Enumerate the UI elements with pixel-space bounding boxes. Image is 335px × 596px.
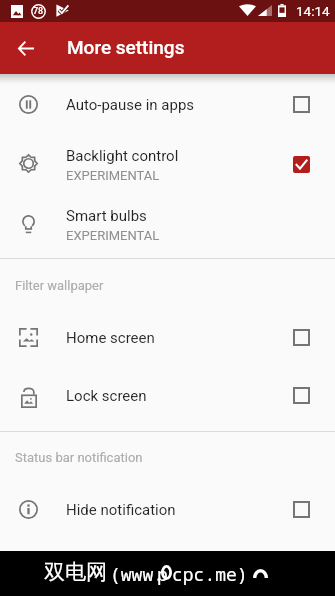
staticText: cpc.me) <box>172 562 248 587</box>
staticText: Hide notification <box>66 501 176 519</box>
staticText: p <box>157 562 168 587</box>
staticText: Backlight control <box>66 147 179 165</box>
button[interactable]: Back <box>2 24 50 72</box>
staticText: Lock screen <box>66 387 147 405</box>
staticText: (www. <box>110 562 164 587</box>
staticText: Status bar notification <box>15 450 143 465</box>
staticText: Filter wallpaper <box>15 278 104 293</box>
button[interactable] <box>0 481 335 539</box>
staticText: 双电网 <box>44 559 107 585</box>
button[interactable] <box>0 309 335 367</box>
staticText: More settings <box>67 36 185 58</box>
staticText: 14:14 <box>296 3 330 19</box>
button[interactable] <box>0 195 335 253</box>
staticText: Auto-pause in apps <box>66 96 195 114</box>
button[interactable] <box>0 368 335 426</box>
staticText: EXPERIMENTAL <box>66 228 160 243</box>
button[interactable] <box>0 75 335 133</box>
staticText: 78 <box>33 6 44 17</box>
staticText: EXPERIMENTAL <box>66 168 160 183</box>
staticText: Smart bulbs <box>66 207 147 225</box>
staticText: Home screen <box>66 329 155 347</box>
button[interactable] <box>0 135 335 193</box>
